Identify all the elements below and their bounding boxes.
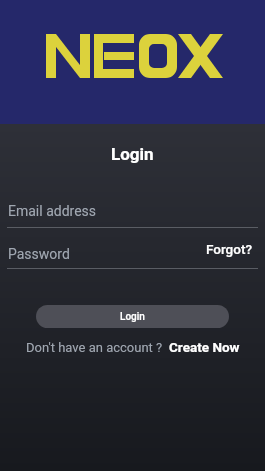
button[interactable]: Password: [7, 240, 258, 269]
staticText: Login: [120, 311, 145, 323]
staticText: Create Now: [169, 339, 240, 355]
staticText: Password: [8, 246, 70, 262]
staticText: Don't have an account ?: [26, 340, 169, 355]
staticText: Forgot?: [206, 241, 252, 257]
button[interactable]: Login: [36, 305, 229, 328]
staticText: Login: [111, 144, 154, 164]
staticText: Email address: [8, 203, 97, 219]
button[interactable]: Don't have an account ?: [26, 339, 240, 355]
button[interactable]: Email address: [7, 198, 258, 228]
button[interactable]: Forgot?: [206, 241, 252, 257]
